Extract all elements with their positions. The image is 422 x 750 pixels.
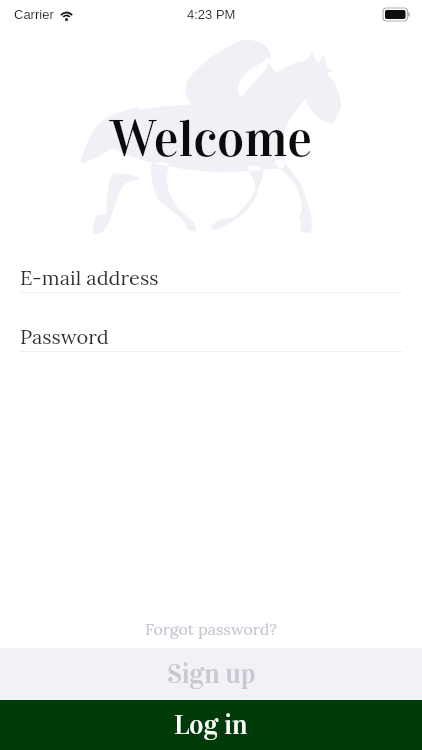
staticText: Welcome [0,107,422,170]
button[interactable]: E-mail address [20,265,402,293]
staticText: Carrier [14,7,54,22]
other: Battery full [383,8,410,21]
button[interactable]: Password [20,324,402,352]
staticText: Password [20,324,109,350]
other: Wi-Fi [59,9,74,21]
button[interactable]: Sign up [0,648,422,700]
staticText: E-mail address [20,265,159,291]
staticText: 4:23 PM [187,7,236,22]
staticText: Forgot password? [145,619,277,639]
staticText: Sign up [167,658,256,691]
button[interactable]: Log in [0,700,422,750]
button[interactable]: Forgot password? [0,610,422,648]
staticText: Log in [174,709,248,742]
